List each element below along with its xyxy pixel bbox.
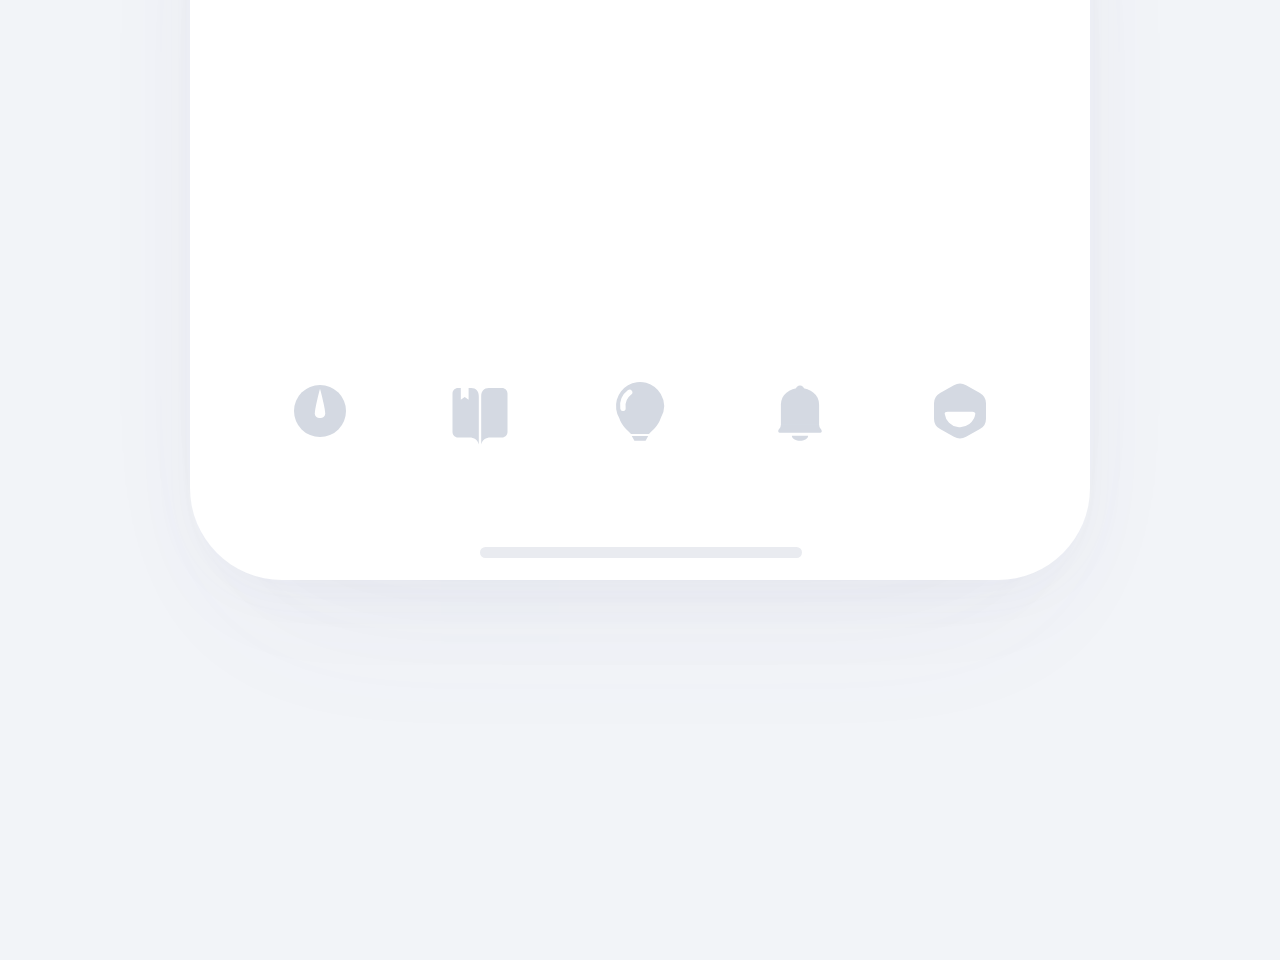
button[interactable]: Dashboard	[265, 365, 375, 457]
button[interactable]: Ideas	[585, 365, 695, 457]
button[interactable]: Notifications	[745, 365, 855, 457]
button[interactable]: Library	[425, 365, 535, 457]
button[interactable]: Profile	[905, 365, 1015, 457]
